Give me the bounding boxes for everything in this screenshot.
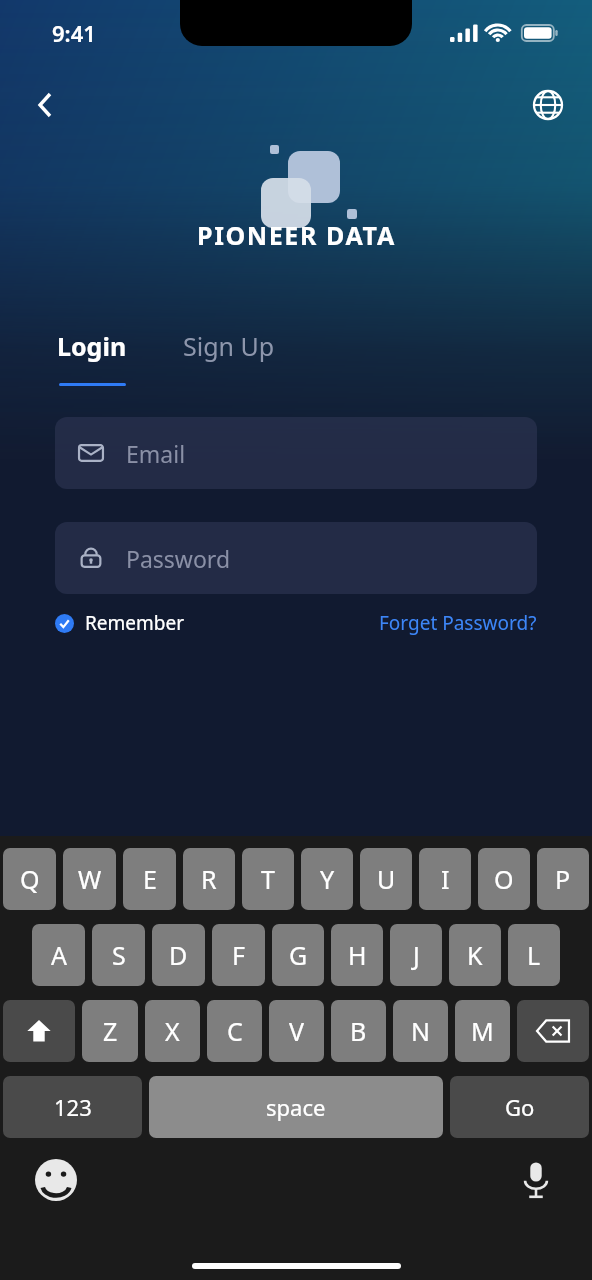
staticText: J (413, 938, 420, 972)
button[interactable]: W (63, 848, 116, 910)
staticText: S (112, 938, 126, 972)
staticText: O (494, 862, 514, 896)
staticText: T (261, 862, 275, 896)
button[interactable]: K (449, 924, 501, 986)
staticText: X (165, 1014, 180, 1048)
button[interactable]: Email (55, 417, 537, 489)
staticText: Z (103, 1014, 118, 1048)
button[interactable]: V (269, 1000, 324, 1062)
button[interactable]: Q (3, 848, 56, 910)
staticText: C (227, 1014, 243, 1048)
staticText: A (51, 938, 67, 972)
button[interactable]: Emoji (30, 1154, 82, 1206)
staticText: H (348, 938, 367, 972)
button[interactable]: L (508, 924, 560, 986)
staticText: P (555, 862, 571, 896)
staticText: space (266, 1092, 326, 1122)
staticText: Password (126, 543, 231, 574)
staticText: L (527, 938, 541, 972)
button[interactable]: Language (526, 83, 570, 127)
staticText: PIONEER DATA (197, 218, 396, 252)
staticText: N (411, 1014, 431, 1048)
button[interactable]: U (360, 848, 412, 910)
button[interactable]: P (537, 848, 589, 910)
staticText: 123 (54, 1092, 92, 1122)
button[interactable]: G (272, 924, 324, 986)
button[interactable]: Login (55, 325, 129, 367)
staticText: K (467, 938, 483, 972)
button[interactable]: 123 (3, 1076, 142, 1138)
button[interactable]: B (331, 1000, 386, 1062)
button[interactable]: H (331, 924, 383, 986)
button[interactable]: D (152, 924, 205, 986)
button[interactable]: Voice input (510, 1154, 562, 1206)
button[interactable]: Backspace (517, 1000, 589, 1062)
staticText: B (350, 1014, 367, 1048)
button[interactable]: J (390, 924, 442, 986)
staticText: D (169, 938, 188, 972)
staticText: E (143, 862, 157, 896)
button[interactable]: Forget Password? (379, 606, 537, 640)
button[interactable]: M (455, 1000, 510, 1062)
button[interactable]: R (183, 848, 235, 910)
staticText: Q (20, 862, 40, 896)
button[interactable]: Password (55, 522, 537, 594)
staticText: Forget Password? (379, 610, 537, 636)
staticText: W (78, 862, 102, 896)
staticText: Login (57, 329, 127, 363)
button[interactable]: space (149, 1076, 443, 1138)
staticText: M (471, 1014, 494, 1048)
button[interactable]: X (145, 1000, 200, 1062)
staticText: Remember (85, 610, 185, 636)
button[interactable]: S (92, 924, 145, 986)
button[interactable]: Remember (55, 606, 185, 640)
staticText: F (232, 938, 245, 972)
button[interactable]: I (419, 848, 471, 910)
button[interactable]: A (32, 924, 85, 986)
staticText: U (377, 862, 396, 896)
button[interactable]: Go (450, 1076, 589, 1138)
staticText: Y (320, 862, 335, 896)
button[interactable]: Y (301, 848, 353, 910)
button[interactable]: T (242, 848, 294, 910)
button[interactable]: Sign Up (181, 325, 277, 367)
button[interactable]: C (207, 1000, 262, 1062)
button[interactable]: N (393, 1000, 448, 1062)
staticText: Sign Up (183, 329, 275, 363)
button[interactable]: E (123, 848, 176, 910)
button[interactable]: Back (22, 82, 68, 128)
button[interactable]: O (478, 848, 530, 910)
staticText: G (289, 938, 308, 972)
staticText: Go (505, 1092, 535, 1122)
staticText: Email (126, 438, 186, 469)
staticText: I (441, 862, 450, 896)
staticText: R (201, 862, 217, 896)
staticText: 9:41 (52, 18, 96, 48)
staticText: V (289, 1014, 305, 1048)
button[interactable]: F (212, 924, 265, 986)
button[interactable]: Shift (3, 1000, 75, 1062)
button[interactable]: Z (82, 1000, 138, 1062)
